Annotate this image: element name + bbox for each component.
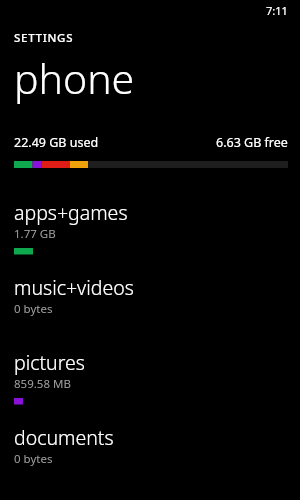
staticText: SETTINGS	[14, 30, 74, 46]
staticText: phone	[14, 50, 135, 106]
button[interactable]: documents	[0, 424, 300, 499]
button[interactable]: pictures	[0, 349, 300, 424]
button[interactable]: music+videos	[0, 274, 300, 349]
staticText: 859.58 MB	[14, 376, 71, 392]
staticText: music+videos	[14, 274, 134, 301]
staticText: 7:11	[266, 3, 288, 18]
staticText: 1.77 GB	[14, 226, 56, 242]
button[interactable]: apps+games	[0, 199, 300, 274]
staticText: 0 bytes	[14, 451, 53, 467]
staticText: documents	[14, 424, 114, 451]
staticText: pictures	[14, 349, 85, 376]
staticText: 0 bytes	[14, 301, 53, 317]
button[interactable]: Storage usage breakdown	[0, 161, 300, 170]
staticText: apps+games	[14, 199, 128, 226]
staticText: 22.49 GB used	[14, 134, 99, 151]
staticText: 6.63 GB free	[216, 134, 288, 151]
